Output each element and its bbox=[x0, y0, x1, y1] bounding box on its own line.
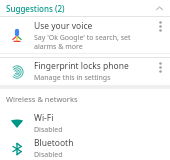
staticText: Wi-Fi bbox=[34, 112, 54, 124]
staticText: Manage this in settings bbox=[34, 73, 111, 83]
staticText: Bluetooth bbox=[34, 137, 74, 149]
button[interactable]: Suggestions (2) bbox=[0, 0, 170, 16]
staticText: Say 'Ok Google' to search, set alarms & … bbox=[34, 33, 150, 51]
staticText: Wireless & networks bbox=[6, 94, 78, 104]
button[interactable]: Bluetooth bbox=[0, 137, 170, 160]
staticText: Use your voice bbox=[34, 20, 93, 32]
staticText: Disabled bbox=[34, 125, 63, 135]
staticText: Suggestions (2) bbox=[6, 3, 65, 14]
button[interactable]: Fingerprint locks phone bbox=[0, 58, 170, 85]
button[interactable]: More options bbox=[150, 17, 170, 53]
button[interactable]: Use your voice bbox=[0, 17, 170, 53]
staticText: Disabled bbox=[34, 150, 63, 160]
other: Collapse suggestions bbox=[152, 1, 166, 15]
staticText: Fingerprint locks phone bbox=[34, 60, 129, 72]
button[interactable]: Wi-Fi bbox=[0, 109, 170, 137]
button[interactable]: More options bbox=[150, 58, 170, 85]
